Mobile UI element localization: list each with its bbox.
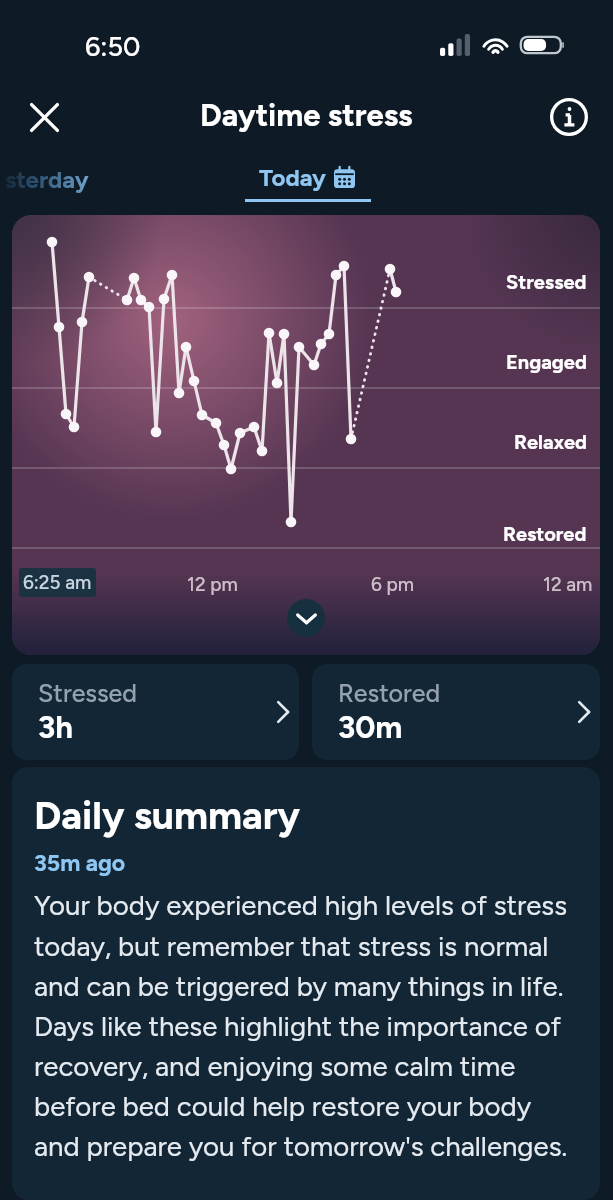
staticText: 6 pm xyxy=(371,573,415,596)
staticText: 3h xyxy=(38,709,73,746)
button[interactable]: Close xyxy=(16,89,72,145)
staticText: Restored xyxy=(338,678,441,708)
staticText: Relaxed xyxy=(514,430,587,454)
staticText: Stressed xyxy=(38,678,138,708)
button[interactable]: Restored xyxy=(312,664,600,760)
staticText: 12 pm xyxy=(187,573,238,596)
staticText: 6:50 xyxy=(85,30,141,62)
staticText: Stressed xyxy=(506,270,587,294)
staticText: Daily summary xyxy=(34,792,301,839)
staticText: 35m ago xyxy=(34,849,126,877)
staticText: sterday xyxy=(5,165,89,194)
staticText: Today xyxy=(259,163,326,192)
button[interactable]: Info xyxy=(543,91,595,143)
button[interactable]: Stressed xyxy=(12,215,600,655)
button[interactable]: Expand chart xyxy=(287,599,325,637)
button[interactable]: Stressed xyxy=(12,664,299,760)
staticText: Daytime stress xyxy=(200,97,413,134)
staticText: 6:25 am xyxy=(23,571,92,594)
staticText: 12 am xyxy=(543,573,593,596)
staticText: Restored xyxy=(503,522,587,546)
staticText: Your body experienced high levels of str… xyxy=(34,889,578,1163)
staticText: 30m xyxy=(338,709,403,746)
staticText: Engaged xyxy=(506,350,587,374)
